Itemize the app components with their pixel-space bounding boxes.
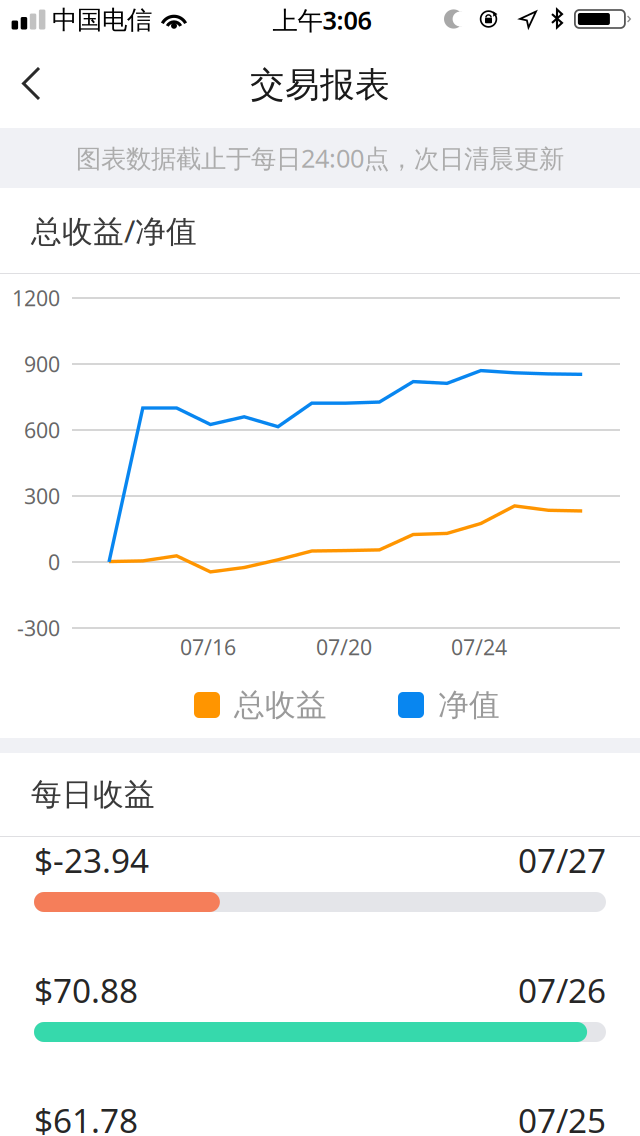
staticText: 07/20 xyxy=(316,633,372,661)
staticText: $61.78 xyxy=(34,1098,138,1136)
staticText: 07/26 xyxy=(518,968,606,1012)
staticText: 07/24 xyxy=(451,633,507,661)
staticText: 07/27 xyxy=(518,838,606,882)
staticText: $-23.94 xyxy=(34,838,149,882)
staticText: 07/25 xyxy=(518,1098,606,1136)
staticText: 总收益 xyxy=(234,686,327,724)
staticText: $70.88 xyxy=(34,968,138,1012)
staticText: 300 xyxy=(24,482,60,510)
staticText: 上午3:06 xyxy=(272,3,371,37)
staticText: 净值 xyxy=(438,686,500,724)
staticText: 总收益/净值 xyxy=(31,210,197,251)
staticText: 600 xyxy=(24,416,60,444)
staticText: 900 xyxy=(24,350,60,378)
staticText: 中国电信 xyxy=(52,4,152,35)
staticText: 07/16 xyxy=(180,633,236,661)
button[interactable]: Back xyxy=(0,50,62,116)
staticText: 0 xyxy=(48,548,60,576)
staticText: 交易报表 xyxy=(250,64,390,106)
staticText: 图表数据截止于每日24:00点，次日清晨更新 xyxy=(76,141,564,175)
staticText: -300 xyxy=(17,614,60,642)
staticText: 1200 xyxy=(12,284,60,312)
staticText: 每日收益 xyxy=(31,776,155,813)
